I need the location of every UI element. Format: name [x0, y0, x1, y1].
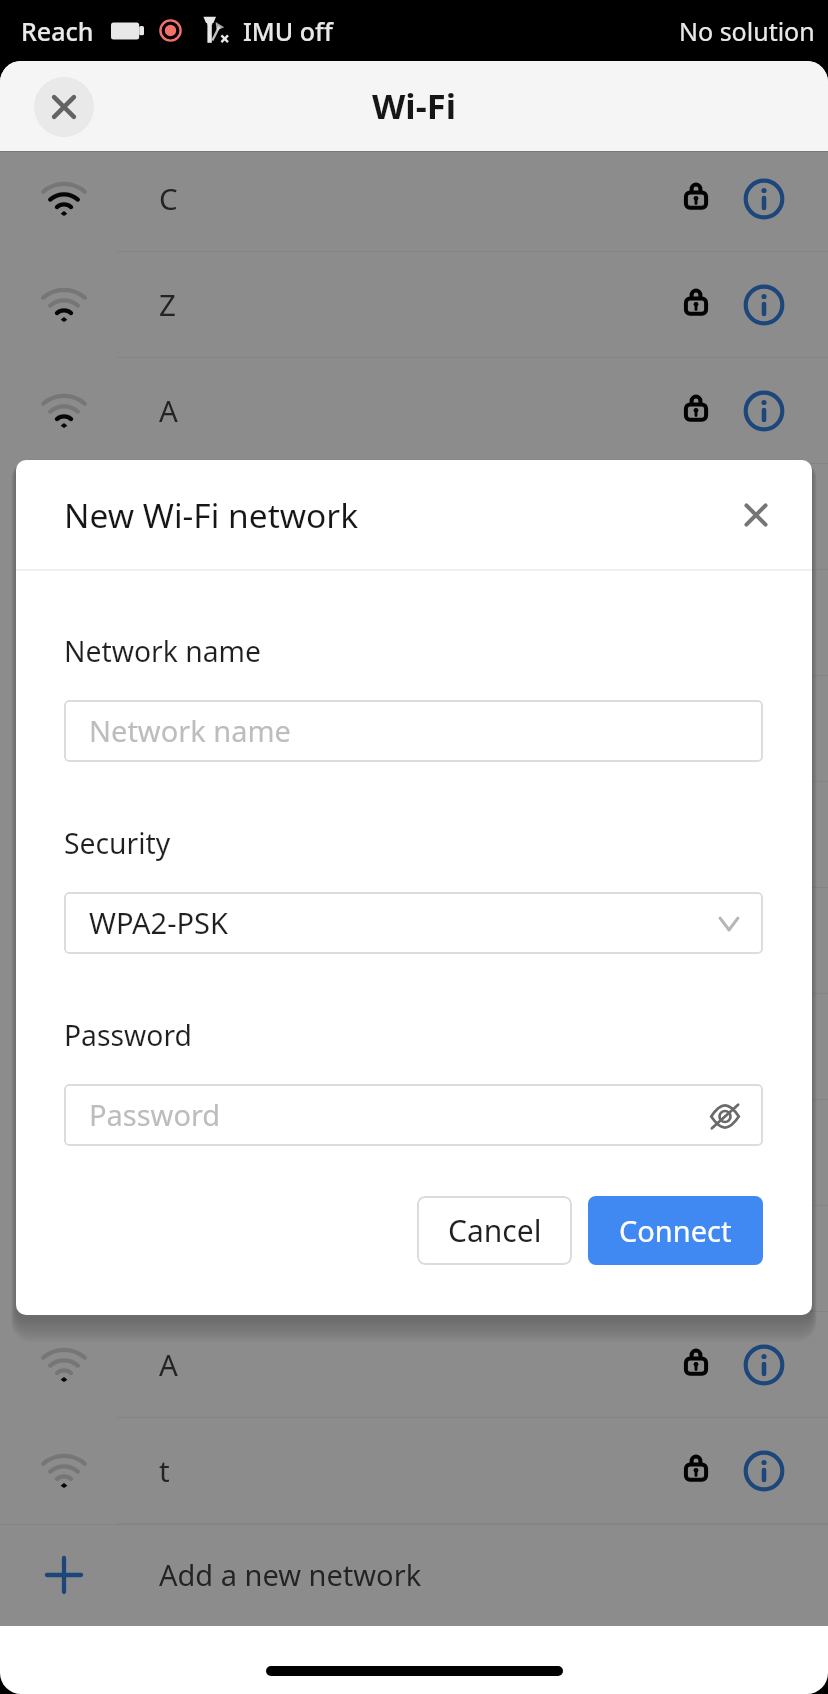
- staticText: Security: [64, 824, 171, 863]
- staticText: G: [159, 920, 181, 960]
- staticText: Password: [89, 1095, 221, 1134]
- button[interactable]: M: [0, 994, 828, 1100]
- button[interactable]: S: [0, 464, 828, 570]
- button[interactable]: C: [0, 146, 828, 252]
- staticText: No solution: [679, 14, 815, 48]
- staticText: C: [159, 178, 178, 218]
- staticText: S: [159, 496, 176, 536]
- button[interactable]: WPA2-PSK: [64, 892, 763, 954]
- button[interactable]: A: [0, 1312, 828, 1418]
- button[interactable]: E: [0, 1206, 828, 1312]
- staticText: Reach: [21, 14, 94, 48]
- staticText: Network name: [89, 711, 291, 750]
- staticText: New Wi-Fi network: [64, 492, 359, 538]
- button[interactable]: Connect: [588, 1196, 763, 1265]
- staticText: R: [159, 1132, 178, 1172]
- button[interactable]: Add a new network: [0, 1524, 828, 1626]
- button[interactable]: N: [0, 676, 828, 782]
- staticText: Cancel: [448, 1210, 542, 1251]
- button[interactable]: Network name: [64, 700, 763, 762]
- button[interactable]: L: [0, 570, 828, 676]
- staticText: Add a new network: [159, 1555, 422, 1594]
- staticText: N: [159, 708, 182, 748]
- button[interactable]: Password: [64, 1084, 763, 1146]
- button[interactable]: Z: [0, 252, 828, 358]
- staticText: Password: [64, 1016, 192, 1055]
- button[interactable]: P: [0, 782, 828, 888]
- button[interactable]: A: [0, 358, 828, 464]
- staticText: IMU off: [243, 14, 333, 48]
- staticText: M: [159, 1026, 186, 1066]
- staticText: P: [159, 814, 177, 854]
- button[interactable]: Close: [34, 77, 94, 137]
- staticText: A: [159, 1344, 178, 1384]
- staticText: WPA2-PSK: [89, 903, 228, 942]
- button[interactable]: t: [0, 1418, 828, 1524]
- button[interactable]: Cancel: [417, 1196, 572, 1265]
- staticText: Network name: [64, 632, 261, 671]
- staticText: t: [159, 1450, 170, 1490]
- staticText: Z: [159, 284, 176, 324]
- staticText: Wi-Fi: [372, 82, 456, 129]
- staticText: A: [159, 390, 178, 430]
- staticText: Connect: [619, 1211, 732, 1250]
- button[interactable]: Close dialog: [724, 483, 788, 547]
- button[interactable]: G: [0, 888, 828, 994]
- staticText: L: [159, 602, 175, 642]
- button[interactable]: R: [0, 1100, 828, 1206]
